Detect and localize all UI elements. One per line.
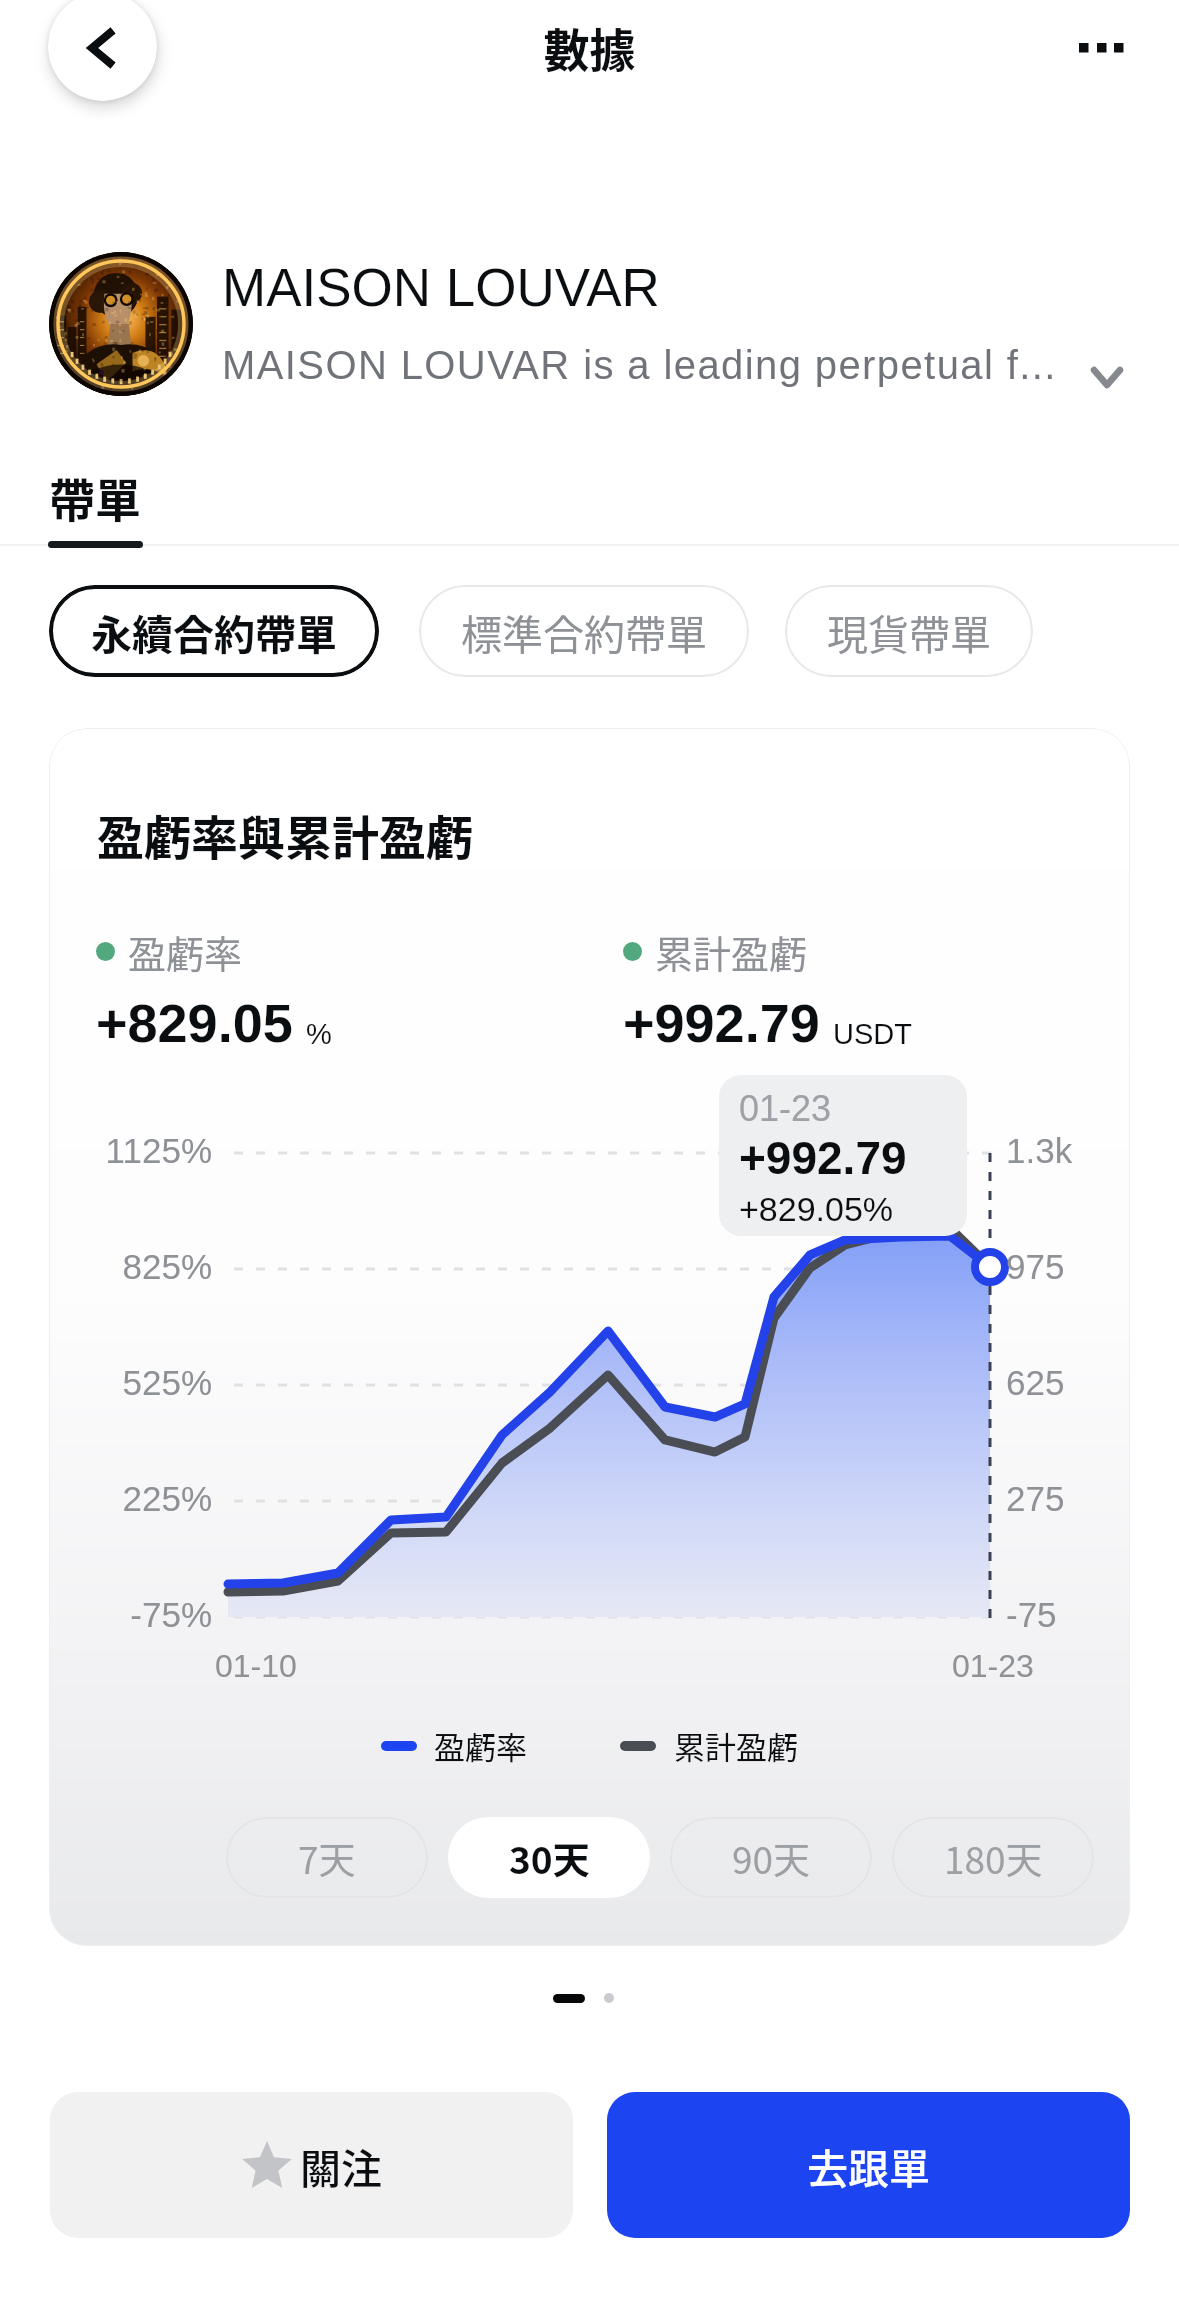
- staticText: +992.79: [739, 1132, 907, 1183]
- button[interactable]: 現貨帶單: [785, 585, 1033, 677]
- staticText: 累計盈虧: [655, 924, 808, 979]
- staticText: 永續合約帶單: [91, 602, 337, 661]
- staticText: 帶單: [49, 464, 141, 531]
- staticText: 累計盈虧: [674, 1723, 798, 1768]
- button[interactable]: 標準合約帶單: [419, 585, 749, 677]
- button[interactable]: 關注: [50, 2092, 573, 2238]
- staticText: 去跟單: [807, 2136, 930, 2195]
- staticText: 1125%: [49, 1131, 212, 1170]
- staticText: 7天: [298, 1831, 356, 1885]
- staticText: 盈虧率與累計盈虧: [97, 800, 473, 868]
- staticText: +829.05%: [739, 1190, 894, 1228]
- button[interactable]: 180天: [892, 1817, 1094, 1898]
- staticText: 01-23: [739, 1088, 832, 1128]
- staticText: 275: [1006, 1479, 1065, 1518]
- staticText: -75%: [49, 1595, 212, 1634]
- staticText: 數據: [0, 14, 1179, 81]
- staticText: +829.05: [96, 993, 293, 1053]
- staticText: -75: [1006, 1595, 1057, 1634]
- staticText: MAISON LOUVAR: [222, 258, 660, 317]
- staticText: 90天: [732, 1831, 811, 1885]
- staticText: 625: [1006, 1363, 1065, 1402]
- button[interactable]: 90天: [670, 1817, 872, 1898]
- button[interactable]: Back: [48, 0, 157, 101]
- staticText: 盈虧率: [434, 1723, 527, 1768]
- staticText: 標準合約帶單: [461, 602, 707, 661]
- staticText: 30天: [509, 1831, 590, 1885]
- staticText: 825%: [49, 1247, 212, 1286]
- staticText: 關注: [300, 2136, 382, 2195]
- staticText: 1.3k: [1006, 1131, 1073, 1170]
- button[interactable]: 去跟單: [607, 2092, 1130, 2238]
- staticText: 180天: [944, 1831, 1043, 1885]
- staticText: 01-10: [215, 1648, 297, 1684]
- button[interactable]: [40, 240, 1060, 410]
- staticText: %: [306, 1018, 332, 1050]
- staticText: MAISON LOUVAR is a leading perpetual f..…: [222, 343, 1057, 388]
- button[interactable]: 永續合約帶單: [49, 585, 379, 677]
- button[interactable]: More options: [1050, 0, 1150, 100]
- button[interactable]: 帶單: [41, 450, 151, 550]
- staticText: +992.79: [623, 993, 820, 1053]
- button[interactable]: 30天: [448, 1817, 650, 1898]
- staticText: 現貨帶單: [827, 602, 991, 661]
- button[interactable]: Expand description: [1067, 337, 1147, 417]
- button[interactable]: 7天: [226, 1817, 428, 1898]
- staticText: 01-23: [952, 1648, 1034, 1684]
- staticText: USDT: [833, 1018, 912, 1050]
- staticText: 975: [1006, 1247, 1065, 1286]
- staticText: 盈虧率: [128, 924, 243, 979]
- staticText: 225%: [49, 1479, 212, 1518]
- staticText: 525%: [49, 1363, 212, 1402]
